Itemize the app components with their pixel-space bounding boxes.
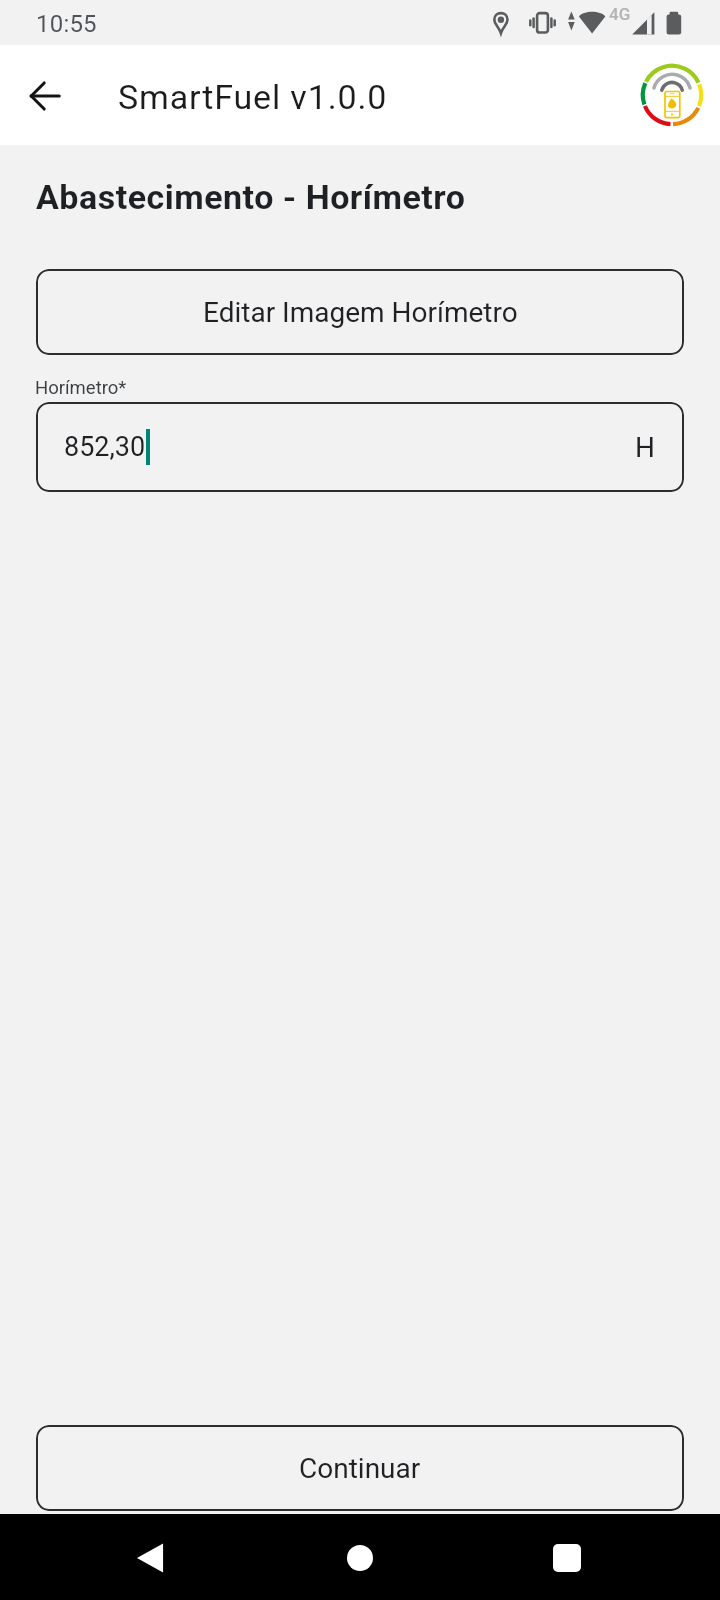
- button[interactable]: 852,30: [36, 402, 684, 492]
- button[interactable]: Recent apps: [524, 1515, 610, 1600]
- staticText: 4G: [609, 4, 631, 24]
- staticText: 10:55: [36, 10, 97, 38]
- button[interactable]: Continuar: [36, 1425, 684, 1511]
- button[interactable]: SmartFuel logo: [636, 59, 708, 131]
- staticText: Continuar: [299, 1452, 421, 1485]
- button[interactable]: Back: [15, 66, 75, 126]
- staticText: Abastecimento - Horímetro: [36, 177, 466, 217]
- staticText: SmartFuel v1.0.0: [118, 77, 388, 117]
- staticText: Editar Imagem Horímetro: [203, 296, 518, 329]
- button[interactable]: Home: [317, 1515, 403, 1600]
- staticText: Horímetro*: [35, 377, 127, 399]
- button[interactable]: Editar Imagem Horímetro: [36, 269, 684, 355]
- button[interactable]: Back: [107, 1515, 193, 1600]
- staticText: H: [635, 431, 655, 464]
- staticText: 852,30: [64, 431, 146, 463]
